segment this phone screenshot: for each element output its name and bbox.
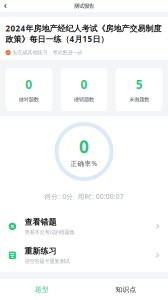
staticText: 重新练习 bbox=[25, 246, 57, 256]
staticText: 未做题数 bbox=[129, 96, 149, 103]
button[interactable]: 知识点 bbox=[84, 279, 168, 300]
staticText: 清空答题卡重新测试 bbox=[25, 258, 70, 265]
staticText: 去完成其他练习，考试更进一步 bbox=[12, 49, 82, 56]
staticText: 0 bbox=[79, 135, 89, 158]
staticText: 题型 bbox=[35, 285, 49, 294]
staticText: 测试报告 bbox=[74, 3, 94, 9]
staticText: 用时: 00:00:07 bbox=[78, 192, 124, 201]
button[interactable]: 查看错题 bbox=[0, 212, 168, 241]
staticText: 5 bbox=[136, 76, 143, 92]
staticText: 2024年房地产经纪人考试《房地产交易制度政策》每日一练（4月15日） bbox=[5, 23, 161, 44]
staticText: 0 bbox=[25, 76, 32, 92]
staticText: 知识点 bbox=[115, 285, 136, 294]
staticText: 查看本次考试的错题集 bbox=[25, 229, 75, 236]
staticText: 正确率% bbox=[70, 159, 97, 168]
staticText: 做错题数 bbox=[74, 96, 94, 103]
staticText: 做对题数 bbox=[19, 96, 39, 103]
button[interactable]: 题型 bbox=[0, 279, 84, 300]
staticText: 0 bbox=[80, 76, 87, 92]
staticText: 查看错题 bbox=[25, 217, 57, 227]
button[interactable]: Back bbox=[0, 0, 11, 12]
button[interactable]: 重新练习 bbox=[0, 241, 168, 270]
staticText: 得分: 0分 bbox=[44, 192, 73, 201]
